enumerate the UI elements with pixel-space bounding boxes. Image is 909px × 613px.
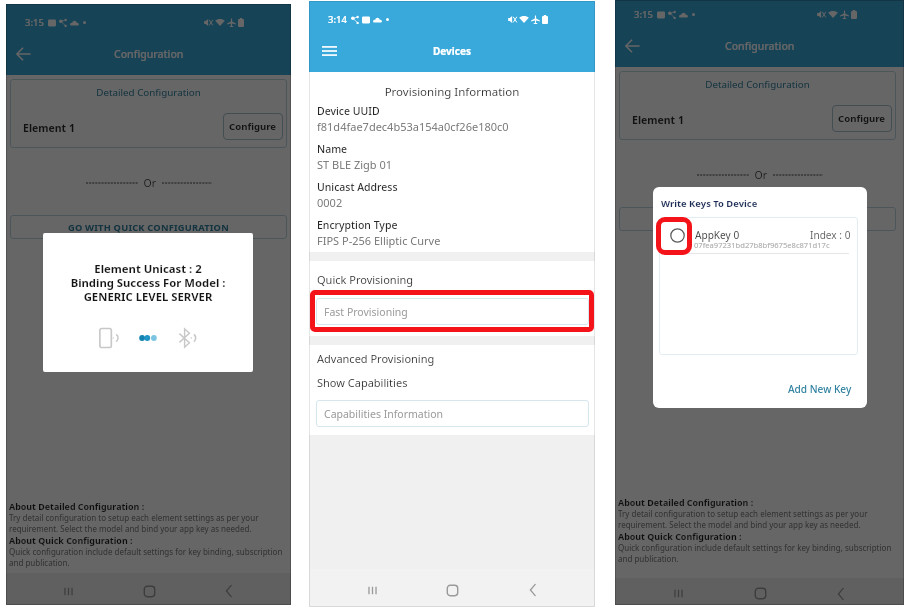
staticText: Configuration: [725, 39, 795, 53]
staticText: 07fea97231bd27b8bf9675e8c871d17c: [694, 240, 830, 250]
button[interactable]: Home: [742, 580, 778, 607]
button[interactable]: Recent apps: [354, 572, 390, 608]
staticText: Detailed Configuration: [10, 86, 287, 99]
button[interactable]: GO WITH QUICK CONFIGURATION: [619, 207, 896, 231]
staticText: Element 1: [23, 121, 75, 135]
staticText: Capabilities Information: [324, 407, 444, 421]
staticText: 3:15: [25, 16, 44, 29]
staticText: Or: [138, 176, 162, 190]
staticText: Fast Provisioning: [324, 305, 408, 319]
staticText: Configure: [838, 112, 886, 125]
staticText: Element Unicast : 2 Binding Success For …: [43, 261, 253, 305]
staticText: Write Keys To Device: [661, 197, 758, 210]
button[interactable]: Capabilities Information: [316, 400, 589, 427]
staticText: f81d4fae7dec4b53a154a0cf26e180c0: [317, 119, 509, 134]
staticText: 0002: [317, 195, 343, 210]
staticText: FIPS P-256 Elliptic Curve: [317, 233, 441, 248]
staticText: Device UUID: [317, 104, 380, 118]
staticText: About Detailed Configuration :: [9, 500, 145, 512]
staticText: About Quick Configuration :: [618, 530, 742, 542]
staticText: Configure: [229, 120, 277, 133]
button[interactable]: Configure: [832, 105, 892, 132]
staticText: Unicast Address: [317, 180, 398, 194]
button[interactable]: Recent apps: [660, 580, 696, 607]
button[interactable]: Back: [617, 31, 647, 61]
staticText: Quick configuration include default sett…: [618, 542, 898, 564]
button[interactable]: Back: [823, 580, 859, 607]
staticText: Configuration: [114, 47, 184, 61]
button[interactable]: Back: [515, 572, 551, 608]
button[interactable]: GO WITH QUICK CONFIGURATION: [10, 215, 287, 239]
staticText: Try detail configuration to setup each e…: [9, 512, 289, 534]
staticText: GO WITH QUICK CONFIGURATION: [68, 221, 229, 234]
staticText: Name: [317, 142, 348, 156]
button[interactable]: Back: [8, 39, 38, 69]
staticText: GO WITH QUICK CONFIGURATION: [677, 213, 838, 226]
button[interactable]: Add New Key: [786, 380, 854, 398]
staticText: Provisioning Information: [309, 84, 595, 100]
staticText: Show Capabilities: [317, 375, 408, 390]
staticText: Element 1: [632, 113, 684, 127]
button[interactable]: Select AppKey 0: [659, 217, 858, 255]
button[interactable]: Recent apps: [50, 575, 86, 607]
staticText: Devices: [433, 44, 471, 58]
staticText: Quick configuration include default sett…: [9, 546, 289, 568]
staticText: Encryption Type: [317, 218, 398, 232]
staticText: About Detailed Configuration :: [618, 496, 754, 508]
staticText: Or: [749, 168, 773, 182]
staticText: 3:15: [634, 8, 653, 21]
staticText: Detailed Configuration: [619, 78, 896, 91]
staticText: Quick Provisioning: [317, 272, 414, 287]
button[interactable]: Home: [434, 572, 470, 608]
button[interactable]: Configure: [223, 113, 283, 140]
staticText: AppKey 0: [695, 228, 740, 242]
staticText: Try detail configuration to setup each e…: [618, 508, 898, 530]
staticText: 3:14: [328, 13, 347, 26]
staticText: Advanced Provisioning: [317, 351, 435, 366]
staticText: Index : 0: [810, 228, 851, 242]
button[interactable]: Fast Provisioning: [316, 298, 589, 325]
other: Select AppKey 0: [670, 228, 685, 243]
button[interactable]: Back: [211, 575, 247, 607]
staticText: About Quick Configuration :: [9, 534, 133, 546]
button[interactable]: Home: [131, 575, 167, 607]
button[interactable]: Open navigation menu: [315, 37, 343, 65]
staticText: ST BLE Zigb 01: [317, 157, 393, 172]
